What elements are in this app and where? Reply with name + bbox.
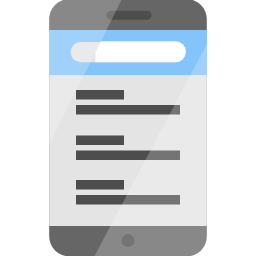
button[interactable]: Smartphone app screen illustration xyxy=(0,0,256,256)
